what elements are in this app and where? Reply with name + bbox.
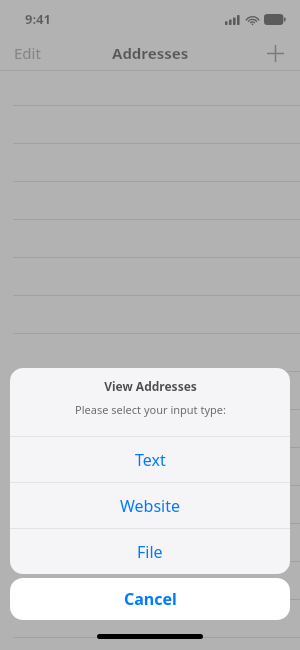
button[interactable]: Website (10, 483, 290, 528)
staticText: Website (120, 495, 181, 517)
staticText: Please select your input type: (75, 402, 226, 417)
staticText: View Addresses (104, 378, 197, 394)
button[interactable] (0, 485, 300, 523)
staticText: 9:41 (25, 10, 51, 28)
button[interactable]: Add address (258, 36, 292, 70)
button[interactable]: File (10, 529, 290, 574)
button[interactable] (0, 637, 300, 650)
staticText: Cancel (124, 588, 177, 610)
button[interactable]: Text (10, 437, 290, 482)
button[interactable] (0, 409, 300, 447)
button[interactable]: Edit (0, 37, 51, 69)
staticText: Addresses (112, 43, 189, 63)
button[interactable] (0, 523, 300, 561)
staticText: Text (135, 449, 166, 471)
button[interactable] (0, 599, 300, 637)
button[interactable]: Cancel (10, 578, 290, 620)
button[interactable] (0, 333, 300, 371)
staticText: Edit (14, 43, 41, 63)
button[interactable] (0, 371, 300, 409)
staticText: File (137, 541, 163, 563)
button[interactable] (0, 447, 300, 485)
button[interactable] (0, 561, 300, 599)
